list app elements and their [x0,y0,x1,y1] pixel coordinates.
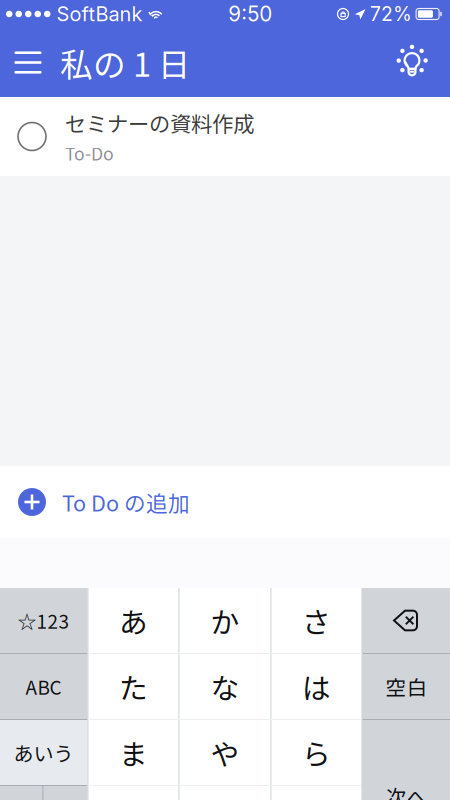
button[interactable]: ABC [0,654,87,719]
button[interactable]: ら [271,720,361,785]
staticText: 72% [370,2,412,26]
button[interactable]: 次へ [362,720,450,800]
staticText: ABC [25,673,61,700]
staticText: 私の 1 日 [60,39,191,86]
staticText: あ [119,600,148,641]
staticText: ☆123 [17,607,69,634]
staticText: さ [302,600,331,641]
button[interactable]: To Do の追加 [0,466,450,538]
button[interactable]: 空白 [362,654,450,719]
staticText: 次へ [385,781,427,800]
staticText: は [302,666,331,707]
button[interactable]: あいう [0,720,87,785]
staticText: た [119,666,148,707]
button[interactable]: ま [88,720,178,785]
staticText: ま [119,732,148,773]
staticText: To Do の追加 [62,486,190,518]
button[interactable]: ☆123 [0,588,87,653]
staticText: To-Do [65,140,114,166]
button[interactable]: Menu [4,28,52,97]
staticText: あいう [13,738,73,767]
staticText: ら [302,732,331,773]
button[interactable]: あ [88,588,178,653]
staticText: セミナーの資料作成 [65,107,254,138]
staticText: や [210,732,239,773]
button[interactable]: セミナーの資料作成 [0,97,450,176]
button[interactable]: か [179,588,270,653]
button[interactable]: た [88,654,178,719]
staticText: 空白 [385,672,427,701]
staticText: か [210,600,239,641]
button[interactable]: や [179,720,270,785]
button[interactable]: は [271,654,361,719]
button[interactable]: Delete [362,588,450,653]
button[interactable]: さ [271,588,361,653]
staticText: 9:50 [228,1,272,26]
staticText: SoftBank [56,2,142,26]
button[interactable]: な [179,654,270,719]
button[interactable]: Suggestions [388,28,436,97]
staticText: な [210,666,239,707]
button[interactable] [271,786,361,800]
